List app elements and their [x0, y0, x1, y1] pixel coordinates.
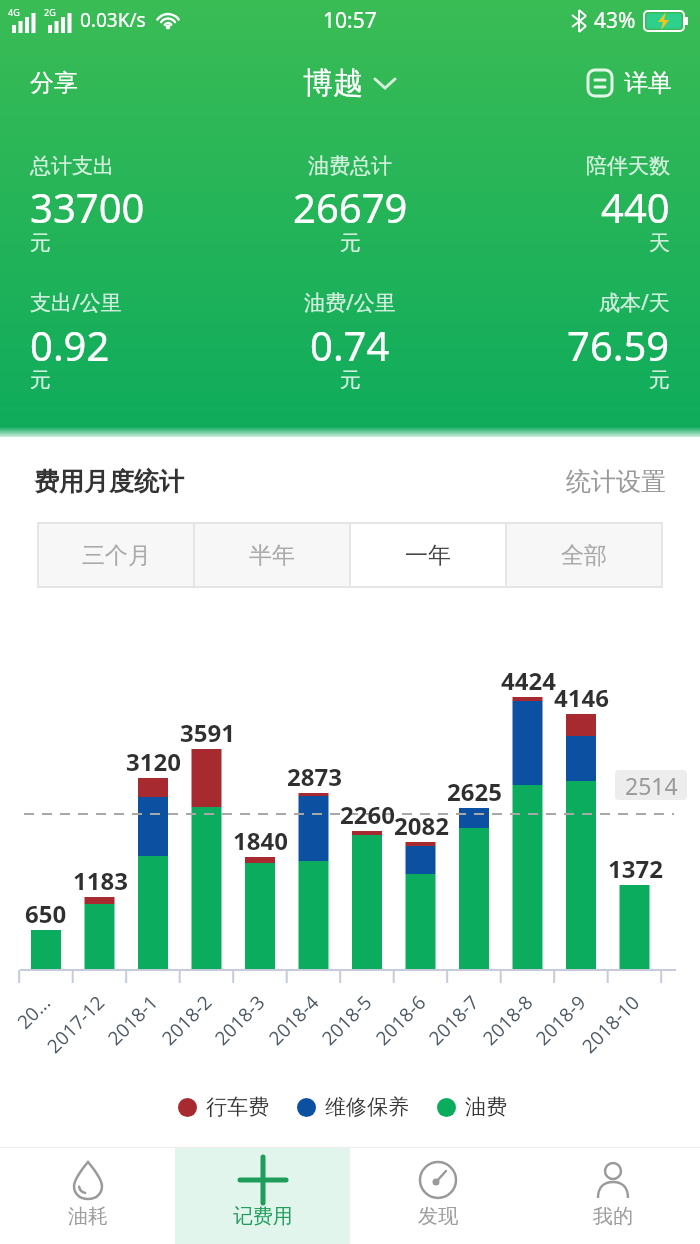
- staticText: 2018-8: [477, 989, 536, 1048]
- staticText: 0.03K/s: [80, 7, 146, 33]
- staticText: 陪伴天数: [586, 153, 670, 179]
- staticText: 半年: [249, 541, 295, 570]
- staticText: 元: [30, 230, 51, 256]
- staticText: 2018-6: [370, 989, 429, 1048]
- button[interactable]: 分享: [30, 68, 78, 98]
- staticText: 76.59: [567, 318, 670, 372]
- staticText: 1840: [233, 824, 288, 852]
- staticText: 详单: [624, 68, 672, 98]
- button[interactable]: 发现: [350, 1148, 525, 1244]
- staticText: 我的: [593, 1204, 633, 1229]
- staticText: 元: [340, 367, 361, 393]
- staticText: 天: [649, 230, 670, 256]
- staticText: 2260: [340, 798, 395, 826]
- button[interactable]: 三个月: [38, 523, 194, 587]
- button[interactable]: 油耗: [0, 1148, 175, 1244]
- staticText: 2017-12: [41, 989, 108, 1056]
- staticText: 2G: [44, 6, 56, 18]
- staticText: 3591: [180, 716, 235, 744]
- staticText: 行车费: [206, 1094, 269, 1120]
- staticText: 2873: [287, 760, 342, 788]
- staticText: 4G: [8, 6, 20, 18]
- staticText: 记费用: [233, 1204, 293, 1229]
- staticText: 33700: [30, 180, 145, 234]
- staticText: 油费: [465, 1094, 507, 1120]
- staticText: 1372: [608, 852, 663, 880]
- staticText: 2018-3: [209, 989, 268, 1048]
- button[interactable]: 半年: [194, 523, 350, 587]
- staticText: 1183: [73, 864, 128, 892]
- staticText: 0.92: [30, 318, 110, 372]
- staticText: 2018-2: [156, 989, 215, 1048]
- staticText: 维修保养: [325, 1094, 409, 1120]
- staticText: 博越: [303, 64, 363, 102]
- staticText: 全部: [561, 541, 607, 570]
- staticText: 总计支出: [30, 153, 114, 179]
- button[interactable]: 详单: [586, 68, 672, 98]
- staticText: 2018-9: [530, 989, 589, 1048]
- staticText: 油费/公里: [304, 288, 396, 317]
- staticText: 26679: [293, 180, 408, 234]
- staticText: 一年: [405, 541, 451, 570]
- staticText: 发现: [418, 1204, 458, 1229]
- staticText: 20...: [11, 989, 54, 1032]
- staticText: 成本/天: [599, 288, 670, 317]
- button[interactable]: 博越: [303, 64, 397, 102]
- staticText: 元: [340, 230, 361, 256]
- staticText: 0.74: [310, 318, 390, 372]
- staticText: 三个月: [82, 541, 151, 570]
- staticText: 2018-1: [102, 989, 161, 1048]
- staticText: 650: [25, 897, 67, 925]
- button[interactable]: 全部: [506, 523, 662, 587]
- staticText: 2018-5: [316, 989, 375, 1048]
- button[interactable]: 一年: [350, 523, 506, 587]
- staticText: 10:57: [323, 6, 377, 35]
- staticText: 元: [30, 367, 51, 393]
- button[interactable]: 统计设置: [566, 466, 666, 497]
- staticText: 支出/公里: [30, 288, 122, 317]
- staticText: 3120: [126, 745, 181, 773]
- staticText: 油费总计: [308, 153, 392, 179]
- staticText: 2018-7: [423, 989, 482, 1048]
- staticText: 2018-10: [576, 989, 643, 1056]
- staticText: 2514: [625, 770, 678, 800]
- staticText: 4424: [501, 664, 556, 692]
- staticText: 元: [649, 367, 670, 393]
- button[interactable]: 我的: [525, 1148, 700, 1244]
- staticText: 2082: [394, 809, 449, 837]
- staticText: 费用月度统计: [34, 466, 184, 497]
- staticText: 4146: [554, 681, 609, 709]
- staticText: 油耗: [68, 1204, 108, 1229]
- staticText: 2018-4: [263, 989, 322, 1048]
- button[interactable]: 记费用: [175, 1148, 350, 1244]
- staticText: 2625: [447, 775, 502, 803]
- staticText: 440: [601, 180, 670, 234]
- staticText: 43%: [594, 6, 636, 35]
